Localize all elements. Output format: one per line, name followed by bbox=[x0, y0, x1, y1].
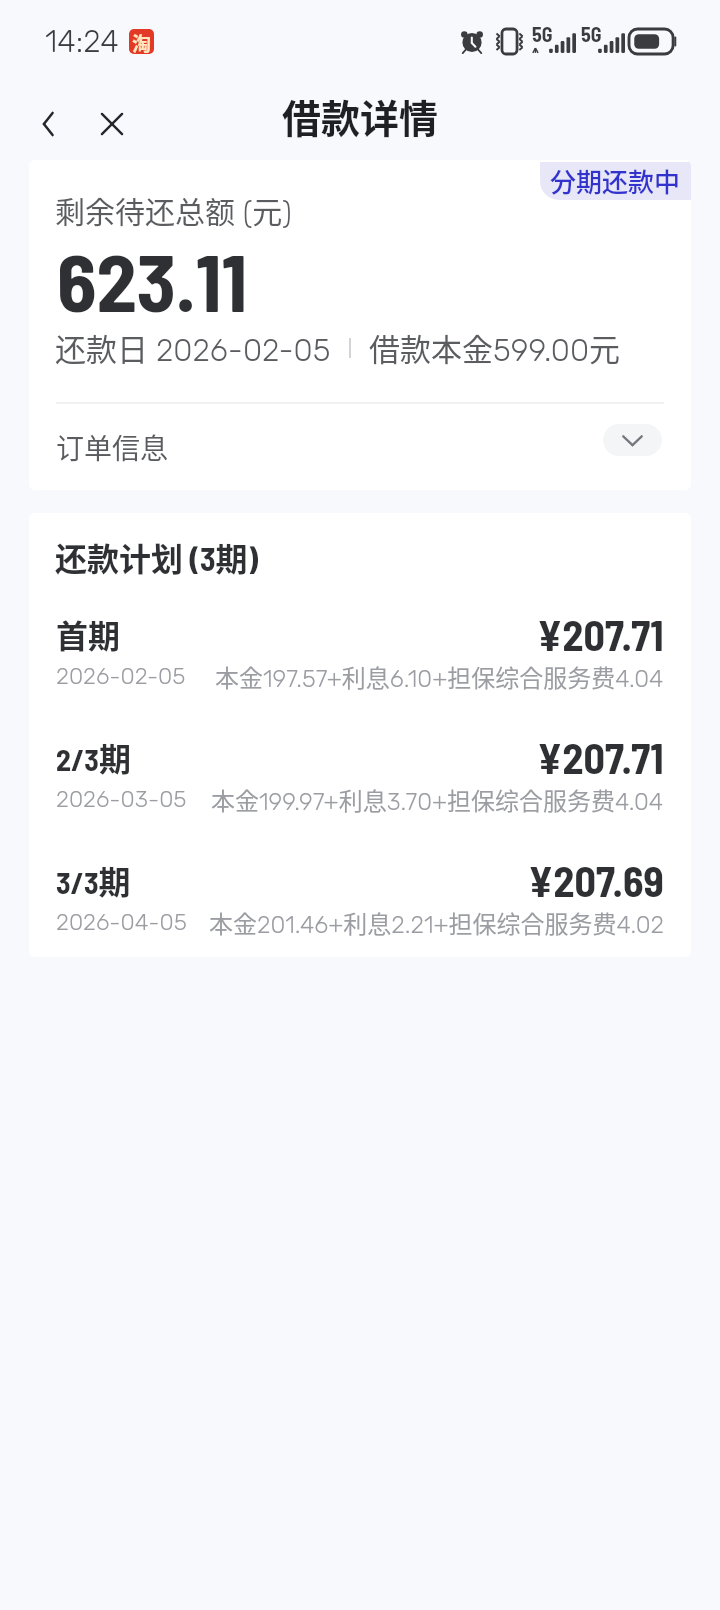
staticText: 首期 bbox=[56, 611, 121, 657]
staticText: 订单信息 bbox=[56, 427, 169, 468]
button[interactable]: Close bbox=[88, 100, 136, 148]
button[interactable]: 2/3期 bbox=[29, 734, 691, 844]
staticText: 本金201.46+利息2.21+担保综合服务费4.02 bbox=[209, 905, 664, 940]
staticText: 2026-02-05 bbox=[56, 662, 186, 689]
staticText: 2/3期 bbox=[56, 734, 131, 780]
button[interactable]: 订单信息 bbox=[29, 404, 691, 490]
staticText: 3/3期 bbox=[56, 857, 131, 903]
staticText: 5G bbox=[532, 22, 553, 46]
staticText: 14:24 bbox=[45, 23, 119, 60]
button[interactable]: 首期 bbox=[29, 611, 691, 721]
staticText: 还款日 2026-02-05 bbox=[55, 325, 331, 370]
staticText: 2026-04-05 bbox=[56, 908, 187, 935]
staticText: ¥207.71 bbox=[537, 609, 664, 659]
staticText: 623.11 bbox=[57, 231, 248, 328]
button[interactable]: Back bbox=[25, 100, 73, 148]
staticText: 2026-03-05 bbox=[56, 785, 187, 812]
staticText: ¥207.71 bbox=[537, 732, 664, 782]
staticText: 借款本金599.00元 bbox=[369, 325, 621, 370]
staticText: 本金199.97+利息3.70+担保综合服务费4.04 bbox=[211, 782, 664, 817]
staticText: 5G bbox=[581, 22, 602, 46]
button[interactable]: 3/3期 bbox=[29, 857, 691, 957]
staticText: 分期还款中 bbox=[550, 162, 681, 200]
staticText: ¥207.69 bbox=[528, 855, 664, 905]
staticText: 还款计划 (3期) bbox=[55, 534, 259, 580]
staticText: 本金197.57+利息6.10+担保综合服务费4.04 bbox=[215, 659, 664, 694]
staticText: 借款详情 bbox=[282, 88, 439, 144]
staticText: 淘 bbox=[132, 29, 152, 54]
staticText: 剩余待还总额 (元) bbox=[55, 188, 292, 231]
